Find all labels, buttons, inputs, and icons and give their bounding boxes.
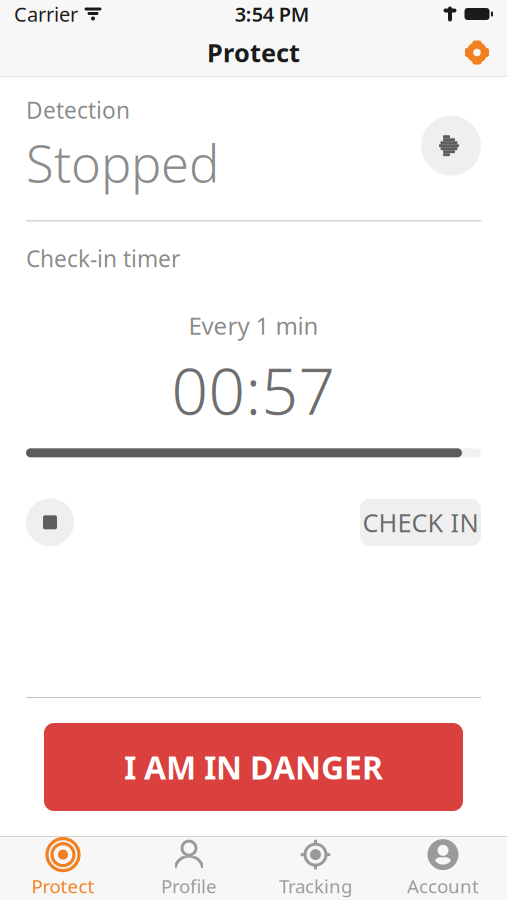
staticText: Account <box>407 874 479 898</box>
button[interactable]: CHECK IN <box>360 499 481 546</box>
staticText: Tracking <box>279 874 352 898</box>
staticText: Carrier <box>14 1 78 27</box>
button[interactable]: Tracking <box>252 837 379 899</box>
staticText: Check-in timer <box>26 243 180 273</box>
staticText: Protect <box>31 874 94 898</box>
button[interactable]: Stop timer <box>26 498 74 546</box>
staticText: CHECK IN <box>362 505 478 539</box>
staticText: Profile <box>161 874 217 898</box>
button[interactable]: Account <box>379 837 507 899</box>
staticText: Stopped <box>26 129 219 196</box>
staticText: 00:57 <box>171 347 335 432</box>
staticText: 3:54 PM <box>235 1 310 27</box>
staticText: I AM IN DANGER <box>124 746 383 788</box>
button[interactable]: Protect <box>0 837 126 899</box>
staticText: Every 1 min <box>188 309 318 341</box>
staticText: Detection <box>26 95 130 125</box>
button[interactable]: Profile <box>126 837 252 899</box>
button[interactable]: Settings <box>454 29 500 75</box>
button[interactable]: Start detection <box>421 116 481 176</box>
button[interactable]: I AM IN DANGER <box>44 723 463 811</box>
staticText: Protect <box>207 36 300 69</box>
